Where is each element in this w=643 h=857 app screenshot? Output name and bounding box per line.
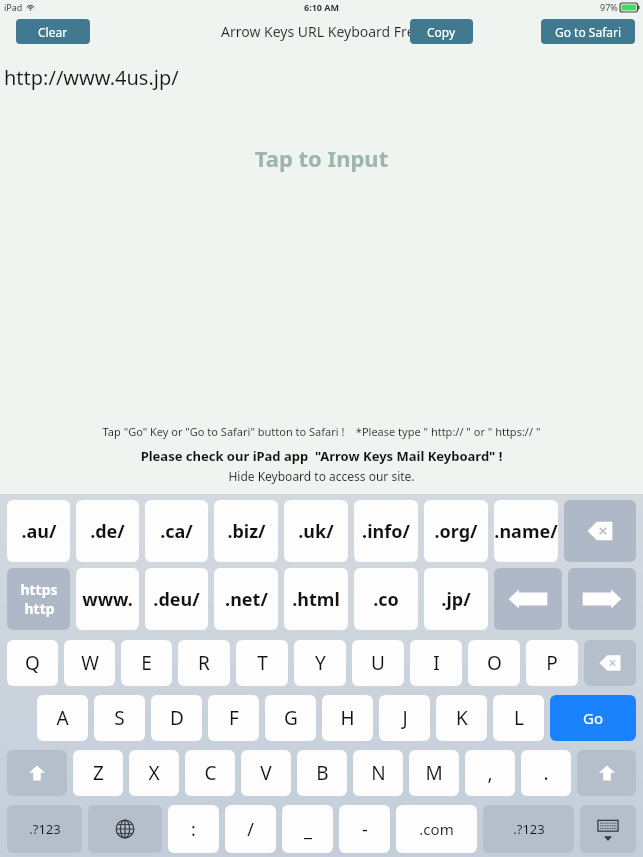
button[interactable]: .info/ bbox=[354, 500, 418, 562]
staticText: Copy bbox=[427, 24, 456, 40]
staticText: D bbox=[170, 705, 184, 731]
button[interactable]: J bbox=[379, 695, 430, 741]
button[interactable]: I bbox=[410, 640, 462, 686]
button[interactable]: .org/ bbox=[424, 500, 488, 562]
staticText: H bbox=[340, 705, 355, 731]
button[interactable]: Q bbox=[7, 640, 58, 686]
staticText: .biz/ bbox=[227, 519, 266, 544]
button[interactable]: K bbox=[436, 695, 487, 741]
button[interactable]: Shift bbox=[7, 750, 67, 796]
staticText: .?123 bbox=[29, 820, 61, 838]
staticText: 6:10 AM bbox=[304, 1, 340, 13]
staticText: https bbox=[20, 580, 58, 599]
staticText: .au/ bbox=[21, 519, 57, 544]
button[interactable]: .?123 bbox=[7, 805, 82, 853]
staticText: Arrow Keys URL Keyboard Free bbox=[221, 22, 423, 41]
button[interactable]: - bbox=[339, 805, 390, 853]
button[interactable]: Backspace bbox=[584, 640, 636, 686]
staticText: Go to Safari bbox=[555, 24, 622, 40]
button[interactable]: Copy bbox=[410, 19, 473, 44]
button[interactable]: Shift bbox=[577, 750, 636, 796]
button[interactable]: R bbox=[178, 640, 230, 686]
staticText: G bbox=[284, 705, 298, 731]
staticText: .net/ bbox=[225, 587, 268, 612]
staticText: .org/ bbox=[434, 519, 478, 544]
button[interactable]: .net/ bbox=[214, 568, 278, 630]
staticText: .ca/ bbox=[160, 519, 193, 544]
staticText: http://www.4us.jp/ bbox=[4, 64, 179, 91]
button[interactable]: D bbox=[151, 695, 202, 741]
button[interactable]: , bbox=[465, 750, 515, 796]
button[interactable]: .co bbox=[354, 568, 418, 630]
button[interactable]: P bbox=[526, 640, 578, 686]
button[interactable]: .?123 bbox=[483, 805, 574, 853]
button[interactable]: .de/ bbox=[76, 500, 139, 562]
button[interactable]: E bbox=[121, 640, 172, 686]
button[interactable]: . bbox=[521, 750, 571, 796]
button[interactable]: / bbox=[225, 805, 276, 853]
button[interactable]: .deu/ bbox=[145, 568, 208, 630]
staticText: Please check our iPad app "Arrow Keys Ma… bbox=[0, 447, 643, 465]
button[interactable]: .ca/ bbox=[145, 500, 208, 562]
button[interactable]: Go bbox=[550, 695, 636, 741]
staticText: / bbox=[247, 817, 254, 842]
button[interactable]: O bbox=[468, 640, 520, 686]
button[interactable]: .biz/ bbox=[214, 500, 278, 562]
staticText: .co bbox=[373, 587, 399, 612]
button[interactable]: .jp/ bbox=[424, 568, 488, 630]
button[interactable]: N bbox=[353, 750, 403, 796]
staticText: Y bbox=[315, 650, 326, 676]
staticText: R bbox=[198, 650, 210, 676]
staticText: F bbox=[229, 705, 239, 731]
staticText: P bbox=[546, 650, 558, 676]
staticText: O bbox=[487, 650, 502, 676]
button[interactable]: _ bbox=[282, 805, 333, 853]
button[interactable]: F bbox=[208, 695, 259, 741]
button[interactable]: .au/ bbox=[7, 500, 70, 562]
staticText: .info/ bbox=[362, 519, 410, 544]
button[interactable]: G bbox=[265, 695, 316, 741]
button[interactable]: https bbox=[7, 568, 70, 630]
button[interactable]: T bbox=[236, 640, 288, 686]
staticText: .html bbox=[292, 587, 340, 612]
staticText: L bbox=[514, 705, 524, 731]
button[interactable]: Y bbox=[294, 640, 346, 686]
staticText: - bbox=[362, 817, 368, 842]
staticText: Clear bbox=[38, 24, 68, 40]
staticText: J bbox=[402, 705, 408, 731]
button[interactable]: .html bbox=[284, 568, 348, 630]
staticText: V bbox=[260, 760, 272, 786]
staticText: , bbox=[487, 760, 493, 786]
button[interactable]: A bbox=[37, 695, 88, 741]
button[interactable]: Switch keyboard bbox=[88, 805, 162, 853]
button[interactable]: U bbox=[352, 640, 404, 686]
button[interactable]: Move right bbox=[568, 568, 636, 630]
button[interactable]: B bbox=[297, 750, 347, 796]
button[interactable]: : bbox=[168, 805, 219, 853]
button[interactable]: www. bbox=[76, 568, 139, 630]
staticText: Go bbox=[583, 708, 603, 728]
button[interactable]: .name/ bbox=[494, 500, 558, 562]
button[interactable]: H bbox=[322, 695, 373, 741]
button[interactable]: V bbox=[241, 750, 291, 796]
button[interactable]: Move left bbox=[494, 568, 562, 630]
button[interactable]: .uk/ bbox=[284, 500, 348, 562]
button[interactable]: .com bbox=[396, 805, 477, 853]
staticText: U bbox=[371, 650, 385, 676]
button[interactable]: Z bbox=[73, 750, 123, 796]
button[interactable]: X bbox=[129, 750, 179, 796]
button[interactable]: Go to Safari bbox=[541, 19, 635, 44]
staticText: I bbox=[433, 650, 440, 676]
button[interactable]: L bbox=[493, 695, 544, 741]
button[interactable]: Clear bbox=[16, 19, 90, 44]
button[interactable]: Delete bbox=[564, 500, 636, 562]
button[interactable]: M bbox=[409, 750, 459, 796]
staticText: .deu/ bbox=[153, 587, 200, 612]
staticText: N bbox=[371, 760, 386, 786]
staticText: S bbox=[114, 705, 125, 731]
staticText: .uk/ bbox=[298, 519, 334, 544]
button[interactable]: S bbox=[94, 695, 145, 741]
button[interactable]: Hide keyboard bbox=[580, 805, 636, 853]
button[interactable]: C bbox=[185, 750, 235, 796]
button[interactable]: W bbox=[64, 640, 115, 686]
